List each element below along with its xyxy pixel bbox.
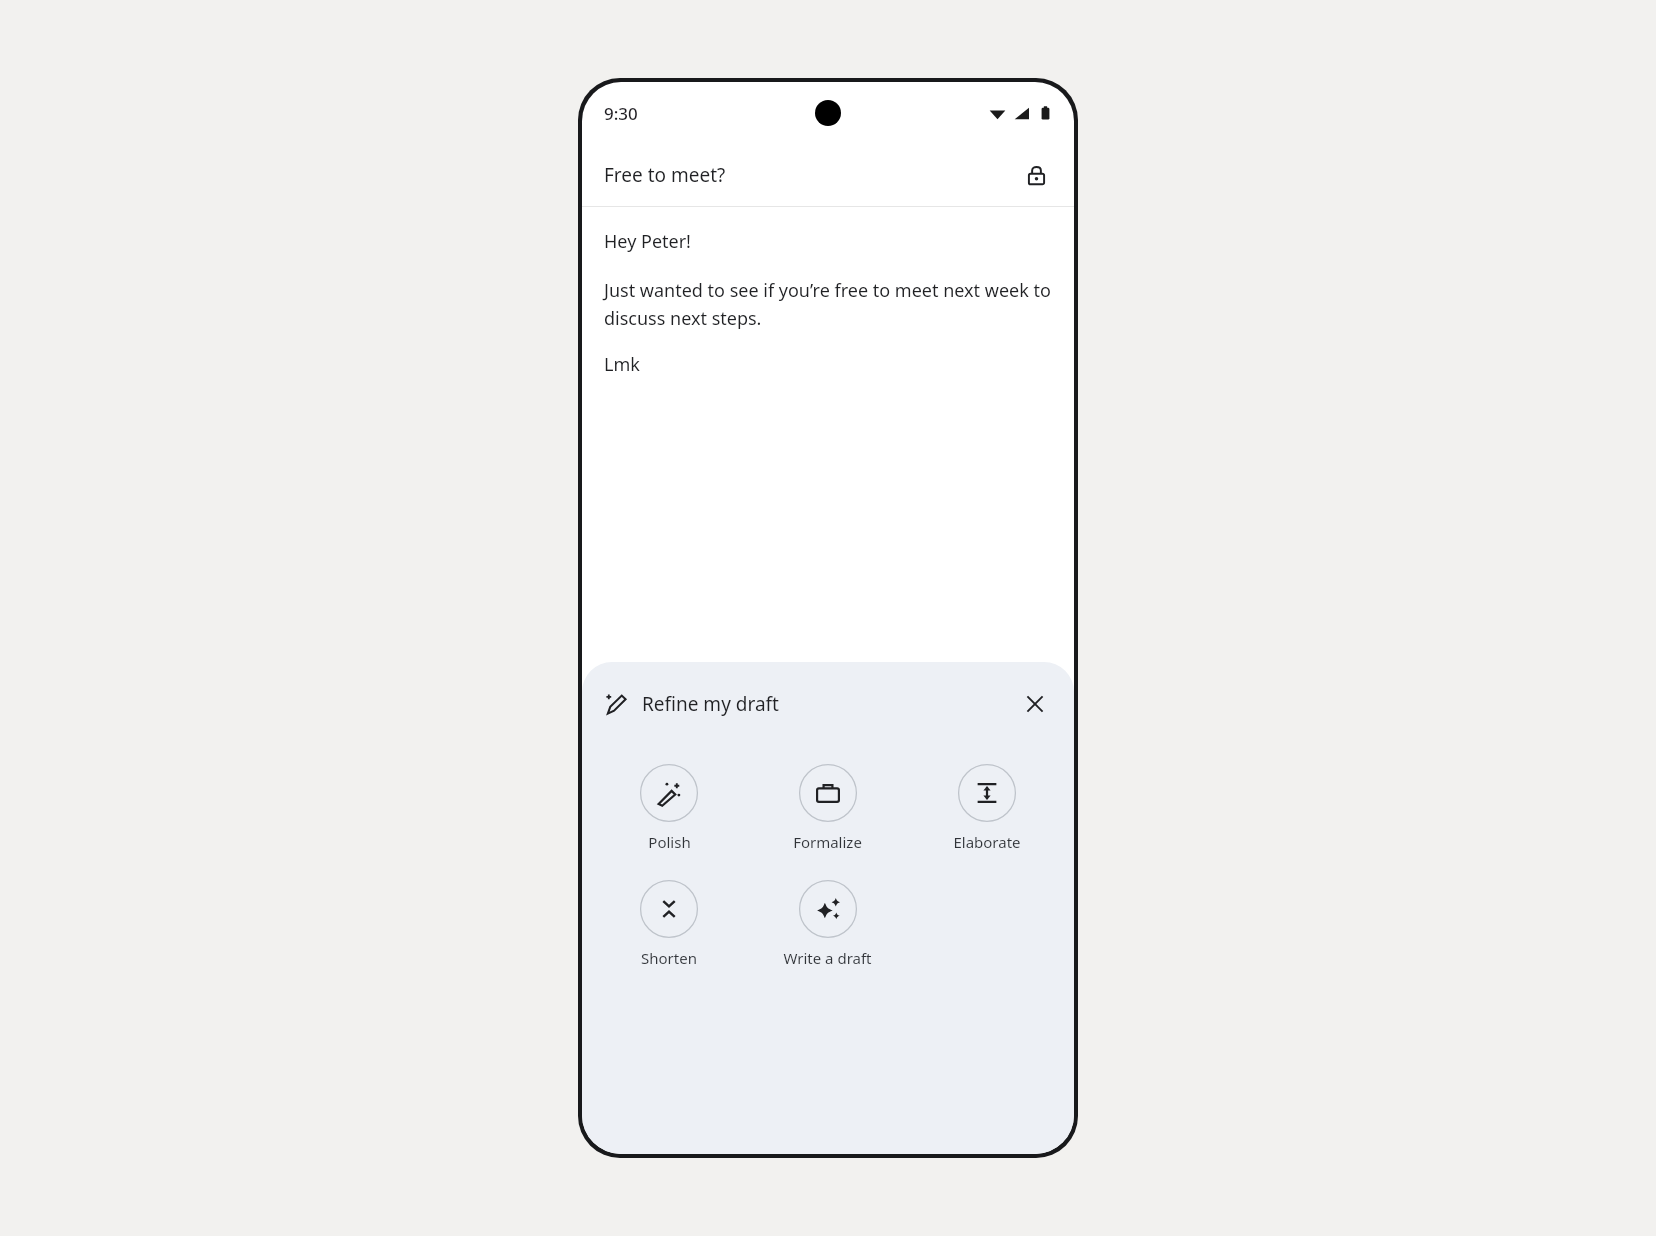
staticText: Just wanted to see if you’re free to mee…: [604, 278, 1052, 330]
staticText: Hey Peter!: [604, 229, 691, 254]
staticText: Elaborate: [953, 832, 1021, 852]
button[interactable]: Shorten: [590, 876, 748, 972]
staticText: Refine my draft: [642, 691, 779, 717]
staticText: Write a draft: [783, 948, 872, 968]
staticText: Polish: [648, 832, 691, 852]
button[interactable]: Close: [1014, 683, 1056, 725]
button[interactable]: Confidential mode: [1016, 155, 1056, 195]
staticText: Formalize: [793, 832, 862, 852]
staticText: Free to meet?: [604, 162, 726, 188]
button[interactable]: Polish: [590, 760, 748, 856]
staticText: 9:30: [604, 102, 638, 125]
staticText: Lmk: [604, 352, 640, 377]
button[interactable]: Write a draft: [748, 876, 907, 972]
button[interactable]: Elaborate: [907, 760, 1066, 856]
button[interactable]: Formalize: [748, 760, 907, 856]
staticText: Shorten: [641, 948, 697, 968]
